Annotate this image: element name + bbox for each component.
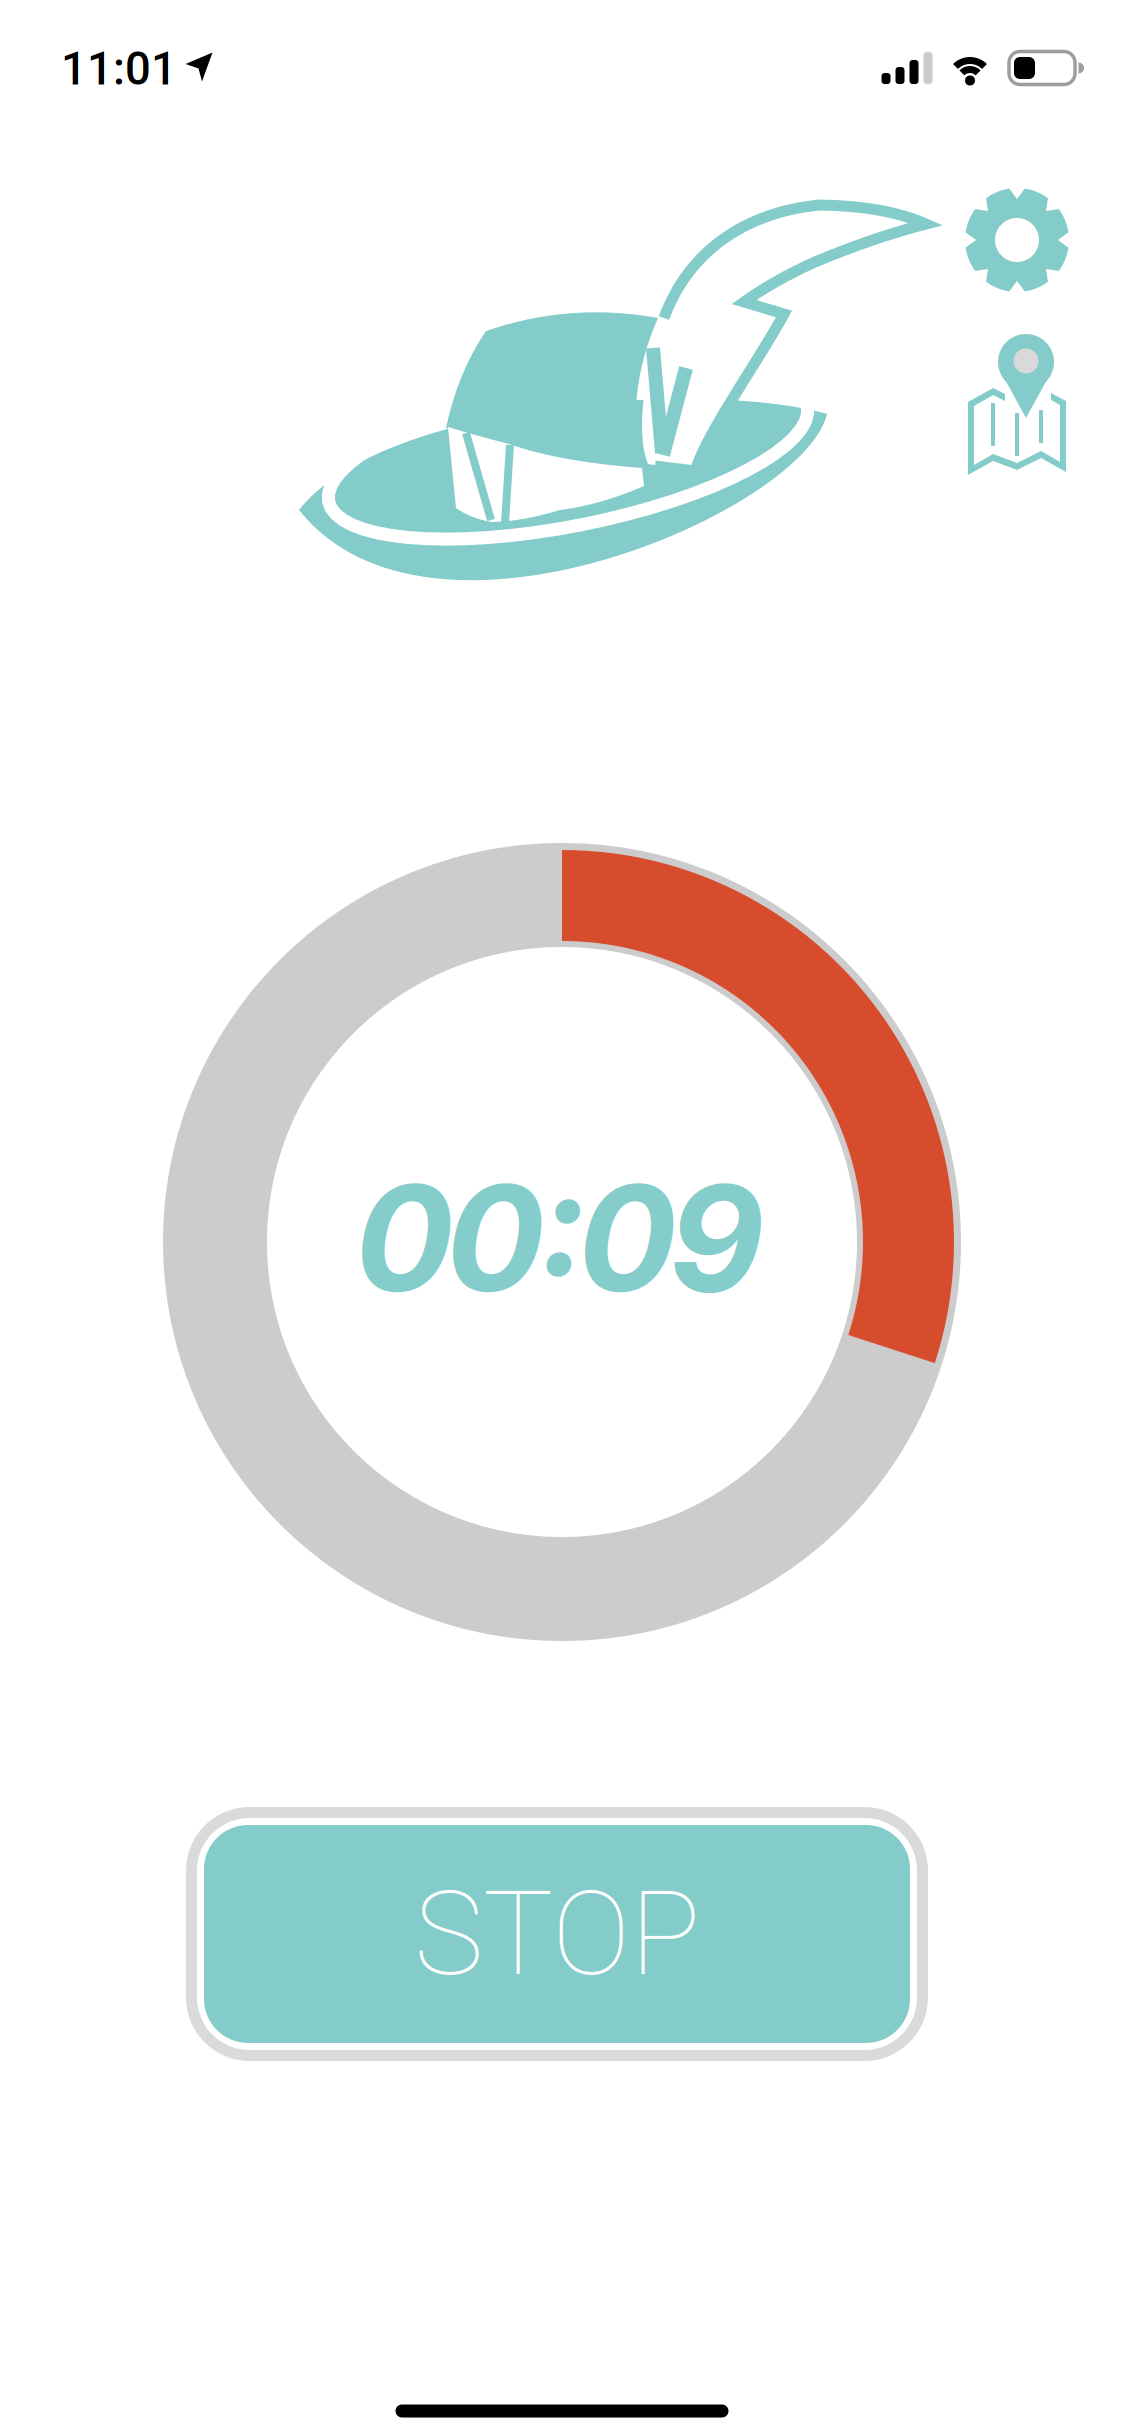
staticText: STOP: [414, 1865, 700, 2003]
staticText: 11:01: [61, 42, 177, 95]
button[interactable]: Settings: [962, 185, 1072, 295]
button[interactable]: Map: [965, 344, 1069, 464]
button[interactable]: STOP: [186, 1807, 928, 2061]
staticText: 00:09: [354, 1149, 763, 1327]
